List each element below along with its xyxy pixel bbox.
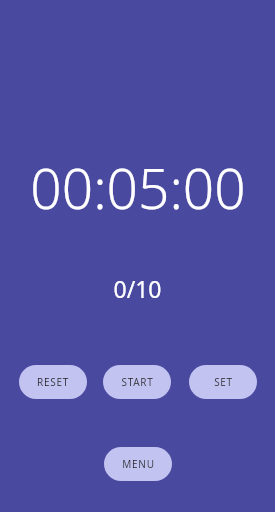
button[interactable]: MENU: [104, 447, 172, 481]
button[interactable]: SET: [189, 365, 257, 399]
staticText: START: [121, 375, 154, 389]
button[interactable]: RESET: [19, 365, 87, 399]
staticText: MENU: [122, 457, 155, 471]
button[interactable]: START: [103, 365, 171, 399]
staticText: 00:05:00: [30, 150, 246, 225]
staticText: SET: [214, 375, 233, 389]
staticText: 0/10: [113, 273, 162, 304]
staticText: RESET: [37, 375, 69, 389]
